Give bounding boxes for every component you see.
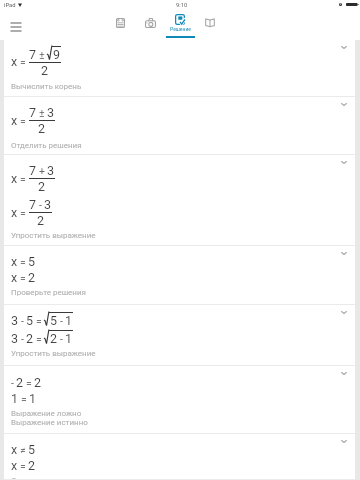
staticText: +	[39, 165, 45, 177]
staticText: -	[60, 333, 63, 345]
staticText: =	[20, 115, 26, 127]
staticText: Решение	[170, 26, 191, 32]
button[interactable]: x	[4, 40, 355, 97]
button[interactable]: Решение	[165, 13, 195, 39]
staticText: 2	[38, 121, 46, 136]
staticText: -	[39, 199, 42, 211]
staticText: 1	[29, 391, 37, 406]
staticText: x	[11, 171, 18, 186]
button[interactable]: x	[4, 434, 355, 480]
staticText: x	[11, 205, 18, 220]
staticText: x	[11, 254, 18, 269]
staticText: -	[60, 315, 63, 327]
staticText: 2	[37, 213, 45, 228]
staticText: Отделить решения	[11, 141, 82, 150]
staticText: =	[20, 56, 26, 68]
staticText: 7	[29, 163, 37, 178]
staticText: 2	[38, 179, 46, 194]
button[interactable]: Notebook tab	[105, 13, 135, 39]
staticText: =	[36, 333, 42, 345]
staticText: =	[20, 460, 26, 472]
button[interactable]: x	[4, 246, 355, 305]
staticText: Выражение истинно	[11, 418, 88, 427]
staticText: =	[20, 173, 26, 185]
staticText: =	[20, 207, 26, 219]
staticText: Упростить выражение	[11, 349, 96, 358]
staticText: 2	[28, 458, 36, 473]
staticText: 3	[47, 105, 55, 120]
staticText: Упростить выражение	[11, 231, 96, 240]
staticText: x	[11, 54, 18, 69]
staticText: x	[11, 113, 18, 128]
staticText: 3	[11, 331, 19, 346]
staticText: 2	[26, 331, 34, 346]
staticText: Проверьте решения	[11, 288, 86, 297]
staticText: ±	[39, 107, 45, 119]
staticText: x	[11, 458, 18, 473]
staticText: ±	[39, 49, 45, 61]
staticText: 1	[65, 331, 73, 346]
button[interactable]: x	[4, 155, 355, 246]
staticText: Окончательное решение	[11, 476, 104, 480]
staticText: x	[11, 442, 18, 457]
staticText: 5	[26, 313, 34, 328]
staticText: =	[36, 315, 42, 327]
button[interactable]: Camera tab	[135, 13, 165, 39]
button[interactable]: x	[4, 97, 355, 155]
button[interactable]: Dictionary tab	[195, 13, 225, 39]
staticText: 7	[29, 47, 37, 62]
staticText: -	[21, 333, 24, 345]
staticText: 2	[34, 375, 42, 390]
staticText: x	[11, 270, 18, 285]
staticText: Выражение ложно	[11, 409, 82, 418]
button[interactable]: 3	[4, 305, 355, 366]
staticText: 5	[28, 254, 36, 269]
staticText: 9:10	[176, 2, 188, 9]
staticText: 3	[44, 197, 52, 212]
staticText: -	[21, 315, 24, 327]
staticText: 7	[29, 105, 37, 120]
staticText: 2	[16, 375, 24, 390]
staticText: =	[20, 256, 26, 268]
button[interactable]: Menu	[6, 17, 26, 37]
staticText: =	[20, 272, 26, 284]
staticText: -	[11, 377, 14, 389]
staticText: 3	[11, 313, 19, 328]
staticText: 7	[29, 197, 37, 212]
staticText: 5	[50, 313, 58, 328]
staticText: =	[26, 377, 32, 389]
staticText: 9	[53, 47, 61, 62]
button[interactable]: -	[4, 366, 355, 434]
staticText: 1	[11, 391, 19, 406]
staticText: 2	[28, 270, 36, 285]
staticText: ≠	[20, 444, 26, 456]
staticText: 1	[65, 313, 73, 328]
staticText: 2	[41, 63, 49, 78]
staticText: Вычислить корень	[11, 82, 82, 91]
staticText: 2	[50, 331, 58, 346]
staticText: 3	[47, 163, 55, 178]
staticText: iPad	[4, 2, 16, 9]
staticText: 5	[28, 442, 36, 457]
staticText: =	[21, 393, 27, 405]
